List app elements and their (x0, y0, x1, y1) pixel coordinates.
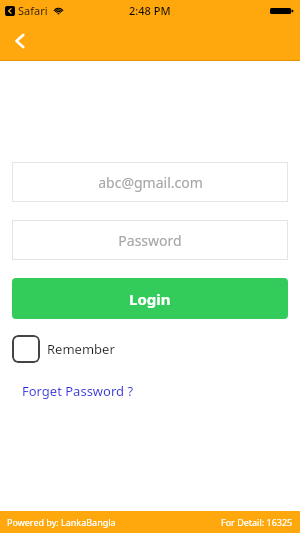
staticText: abc@gmail.com (98, 173, 203, 192)
button[interactable]: Back (0, 21, 40, 60)
staticText: 2:48 PM (129, 3, 171, 18)
staticText: Forget Password ? (22, 382, 134, 400)
button[interactable]: Login (12, 278, 288, 319)
staticText: Login (129, 289, 171, 309)
button[interactable]: Remember (12, 334, 115, 364)
staticText: For Detail: 16325 (221, 516, 293, 528)
button[interactable]: abc@gmail.com (12, 162, 288, 202)
staticText: Remember (47, 340, 115, 358)
button[interactable]: Forget Password ? (22, 382, 134, 400)
staticText: Powered by: LankaBangla (7, 516, 116, 528)
staticText: Safari (18, 3, 48, 18)
button[interactable]: Password (12, 220, 288, 260)
staticText: Password (118, 231, 182, 250)
